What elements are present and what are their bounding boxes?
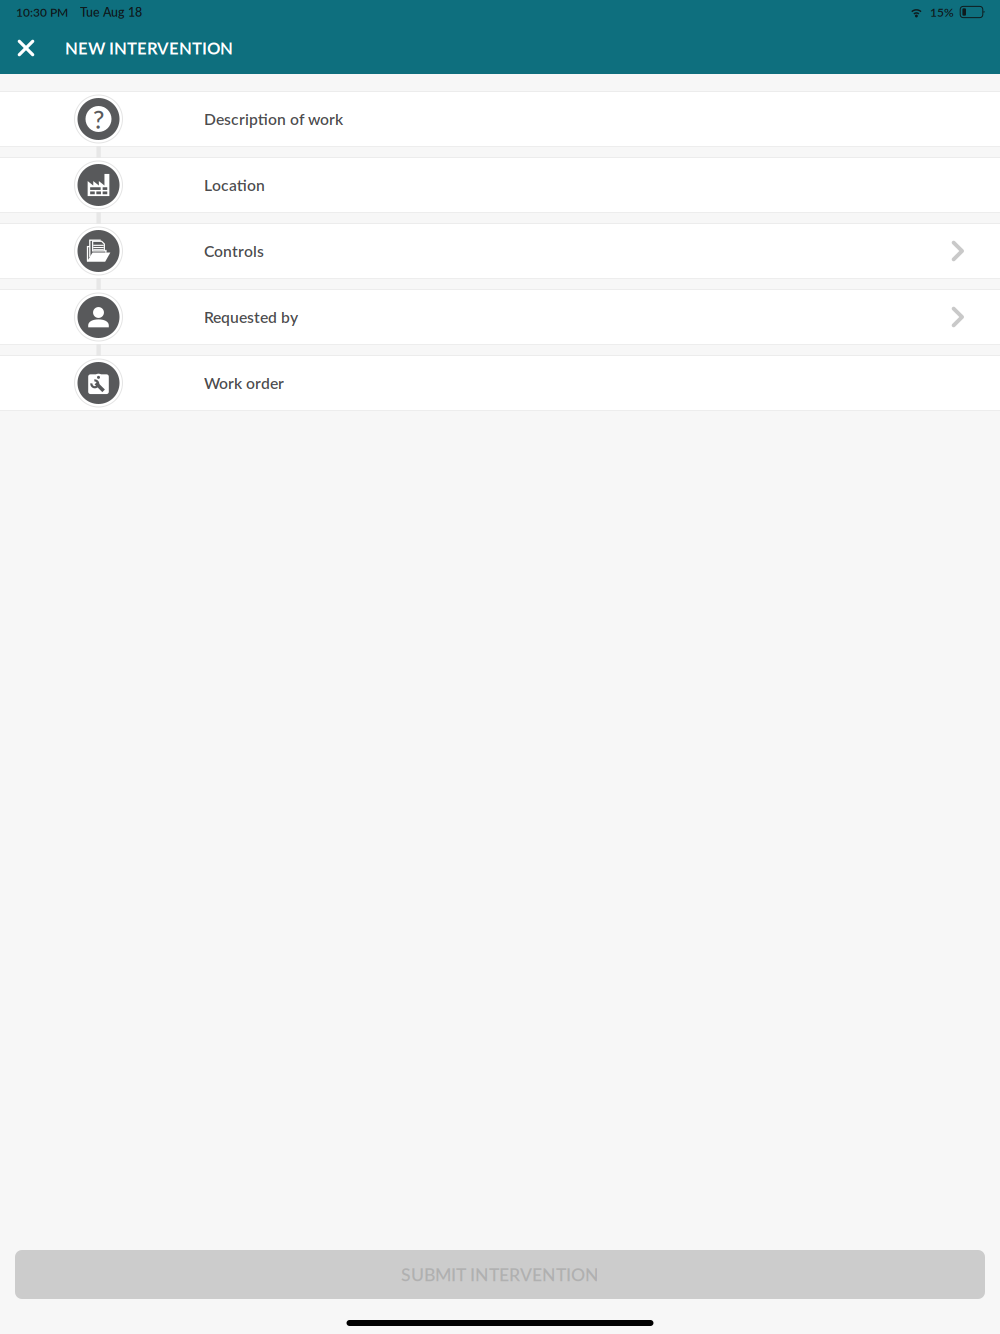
staticText: Description of work [204, 110, 343, 128]
staticText: NEW INTERVENTION [65, 38, 233, 58]
staticText: ? [93, 104, 104, 134]
button[interactable]: Requested by [0, 290, 1000, 344]
staticText: Work order [204, 374, 284, 392]
button[interactable]: Close [4, 26, 48, 70]
staticText: SUBMIT INTERVENTION [401, 1264, 599, 1285]
button[interactable]: Work order [0, 356, 1000, 410]
staticText: 15% [930, 5, 954, 19]
staticText: 10:30 PM [16, 5, 68, 19]
button[interactable]: SUBMIT INTERVENTION [15, 1250, 985, 1299]
staticText: Tue Aug 18 [80, 5, 142, 19]
button[interactable]: Location [0, 158, 1000, 212]
staticText: Controls [204, 242, 264, 260]
button[interactable]: Controls [0, 224, 1000, 278]
button[interactable]: ? [0, 92, 1000, 146]
staticText: Location [204, 176, 265, 194]
staticText: Requested by [204, 308, 298, 326]
